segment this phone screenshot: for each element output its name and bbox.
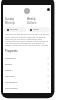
staticText: Sunday	[5, 17, 15, 21]
button[interactable]: Ministries	[3, 55, 51, 61]
button[interactable]: More options	[47, 8, 50, 11]
staticText: Welcome to our parish community. We gath…	[5, 33, 50, 46]
staticText: Sacraments	[5, 81, 18, 84]
staticText: Ministries	[5, 57, 16, 60]
staticText: Programs	[5, 49, 18, 53]
staticText: Weekly	[27, 17, 36, 21]
staticText: Invite	[33, 28, 39, 31]
button[interactable]: Invite	[28, 27, 50, 32]
staticText: Give Online	[5, 87, 18, 90]
button[interactable]: Gallery	[3, 67, 51, 73]
button[interactable]: Sermons	[3, 73, 51, 79]
staticText: Donate	[10, 28, 18, 31]
button[interactable]: Sacraments	[3, 79, 51, 85]
staticText: Events	[5, 63, 13, 66]
staticText: Gallery	[5, 69, 13, 72]
staticText: Bulletin	[27, 21, 37, 25]
staticText: Worship	[5, 21, 16, 25]
button[interactable]: Events	[3, 61, 51, 67]
staticText: Sermons	[5, 75, 15, 78]
button[interactable]: Give Online	[3, 85, 51, 91]
button[interactable]: Donate	[5, 27, 26, 32]
